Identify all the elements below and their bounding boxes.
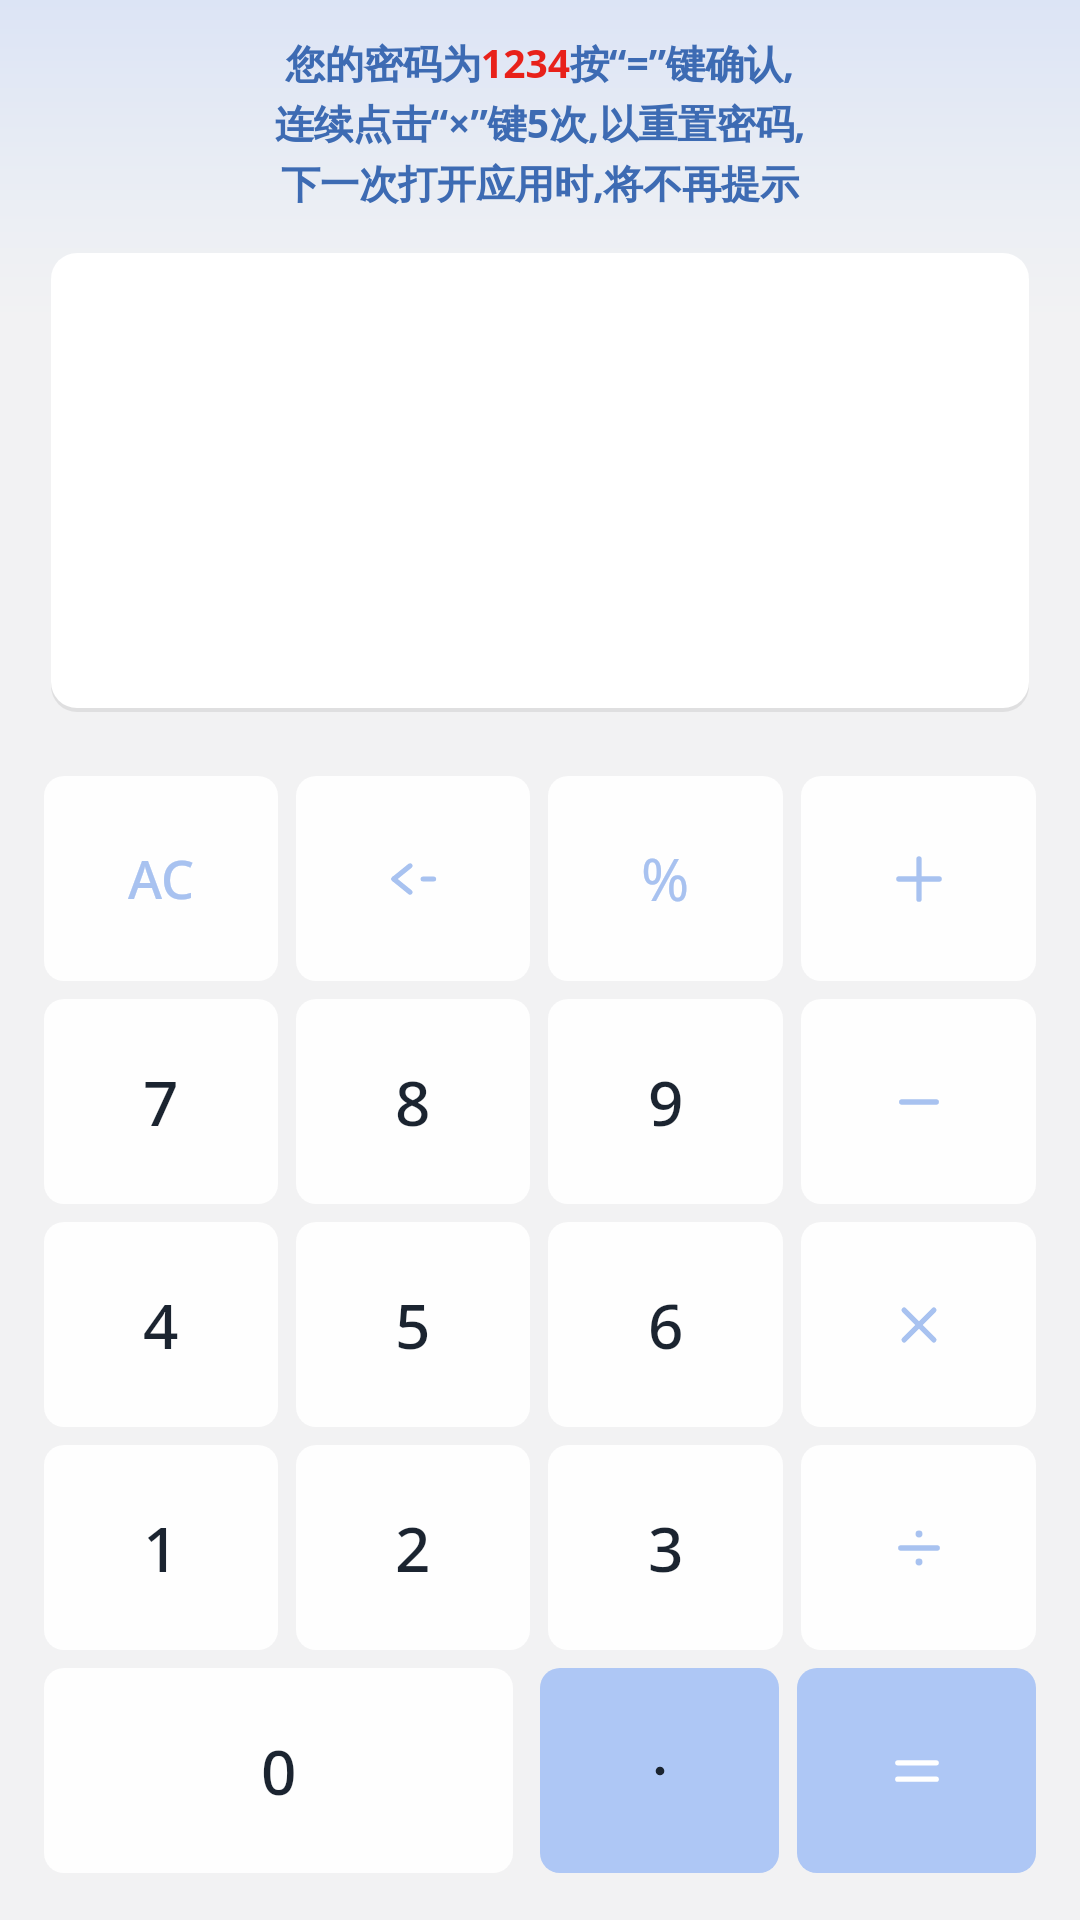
staticText: 5 [395,1283,431,1367]
button[interactable]: 8 [296,999,530,1204]
button[interactable]: AC [44,776,278,981]
staticText: 1 [143,1506,179,1590]
button[interactable]: Plus [801,776,1036,981]
button[interactable]: Equals [797,1668,1036,1873]
button[interactable]: 0 [44,1668,513,1873]
button[interactable]: Minus [801,999,1036,1204]
staticText: % [641,839,690,918]
staticText: 0 [261,1729,297,1813]
staticText: 2 [395,1506,431,1590]
button[interactable]: 4 [44,1222,278,1427]
button[interactable]: 9 [548,999,783,1204]
button[interactable]: 7 [44,999,278,1204]
staticText: 8 [395,1060,431,1144]
button[interactable]: 1 [44,1445,278,1650]
button[interactable]: Multiply [801,1222,1036,1427]
button[interactable]: 3 [548,1445,783,1650]
button[interactable]: Backspace [296,776,530,981]
button[interactable]: Decimal point [540,1668,779,1873]
staticText: 7 [143,1060,179,1144]
button[interactable]: 5 [296,1222,530,1427]
staticText: 6 [648,1283,684,1367]
staticText: 4 [143,1283,179,1367]
staticText: 3 [648,1506,684,1590]
button[interactable]: 6 [548,1222,783,1427]
button[interactable]: Divide [801,1445,1036,1650]
staticText: 您的密码为1234按“=”键确认, 连续点击“×”键5次,以重置密码, 下一次打… [24,36,1056,209]
staticText: 9 [648,1060,684,1144]
button[interactable]: 2 [296,1445,530,1650]
button[interactable]: % [548,776,783,981]
staticText: AC [128,843,195,914]
